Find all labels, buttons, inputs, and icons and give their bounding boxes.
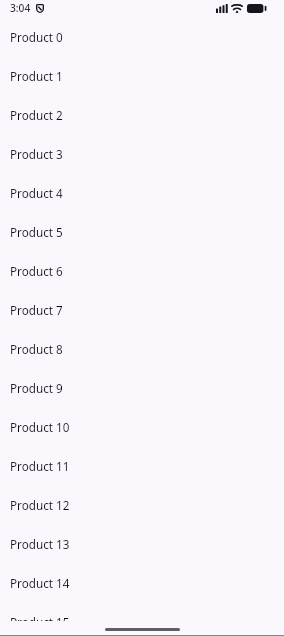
button[interactable]: Product 10 bbox=[0, 407, 284, 446]
button[interactable]: Product 8 bbox=[0, 329, 284, 368]
staticText: Product 0 bbox=[10, 29, 63, 45]
button[interactable]: Product 12 bbox=[0, 485, 284, 524]
button[interactable]: Product 11 bbox=[0, 446, 284, 485]
staticText: Product 10 bbox=[10, 419, 70, 435]
other: Battery full bbox=[247, 4, 266, 13]
button[interactable]: Product 13 bbox=[0, 524, 284, 563]
button[interactable]: Product 15 bbox=[0, 602, 284, 621]
staticText: Product 2 bbox=[10, 107, 63, 123]
staticText: Product 8 bbox=[10, 341, 63, 357]
staticText: Product 9 bbox=[10, 380, 63, 396]
staticText: Product 6 bbox=[10, 263, 63, 279]
button[interactable]: Product 2 bbox=[0, 95, 284, 134]
staticText: Product 14 bbox=[10, 575, 70, 591]
button[interactable]: Product 3 bbox=[0, 134, 284, 173]
button[interactable]: Home bbox=[105, 628, 180, 631]
staticText: Product 1 bbox=[10, 68, 63, 84]
button[interactable]: Product 6 bbox=[0, 251, 284, 290]
staticText: Product 4 bbox=[10, 185, 63, 201]
staticText: Product 12 bbox=[10, 497, 70, 513]
staticText: Product 3 bbox=[10, 146, 63, 162]
staticText: Product 13 bbox=[10, 536, 70, 552]
other: Mobile signal bbox=[216, 4, 228, 13]
other: Do not disturb bbox=[36, 4, 44, 13]
button[interactable]: Product 7 bbox=[0, 290, 284, 329]
button[interactable]: Product 9 bbox=[0, 368, 284, 407]
staticText: Product 5 bbox=[10, 224, 63, 240]
button[interactable]: Product 0 bbox=[0, 17, 284, 56]
staticText: Product 15 bbox=[10, 614, 70, 621]
staticText: Product 7 bbox=[10, 302, 63, 318]
staticText: Product 11 bbox=[10, 458, 70, 474]
other: Wi-Fi bbox=[231, 4, 243, 14]
button[interactable]: Product 5 bbox=[0, 212, 284, 251]
button[interactable]: Product 14 bbox=[0, 563, 284, 602]
button[interactable]: Product 1 bbox=[0, 56, 284, 95]
button[interactable]: Product 4 bbox=[0, 173, 284, 212]
staticText: 3:04 bbox=[10, 1, 31, 15]
